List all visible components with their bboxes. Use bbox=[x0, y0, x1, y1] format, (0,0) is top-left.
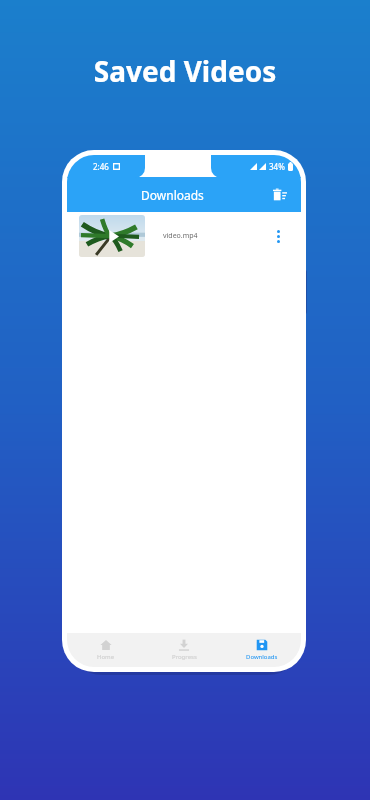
staticText: Downloads bbox=[246, 653, 278, 661]
button[interactable]: More options bbox=[263, 221, 293, 251]
staticText: Progress bbox=[172, 653, 197, 661]
button[interactable]: Delete all bbox=[269, 184, 291, 206]
button[interactable]: Downloads bbox=[223, 633, 301, 667]
button[interactable]: Progress bbox=[145, 633, 223, 667]
button[interactable]: Home bbox=[67, 633, 145, 667]
staticText: 34% bbox=[269, 161, 285, 172]
button[interactable]: video.mp4 bbox=[67, 212, 301, 260]
staticText: 2:46 bbox=[93, 161, 109, 172]
staticText: video.mp4 bbox=[163, 231, 198, 241]
staticText: Saved Videos bbox=[0, 52, 370, 90]
staticText: Home bbox=[97, 653, 115, 661]
staticText: Downloads bbox=[141, 187, 204, 203]
